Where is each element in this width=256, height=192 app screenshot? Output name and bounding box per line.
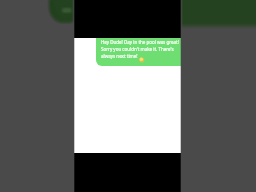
other: Conversation video — [74, 0, 181, 192]
staticText: Hey Dude! Day in the pool was great! Sor… — [101, 39, 179, 59]
button[interactable]: Hey Dude! Day in the pool was great! Sor… — [96, 38, 181, 66]
